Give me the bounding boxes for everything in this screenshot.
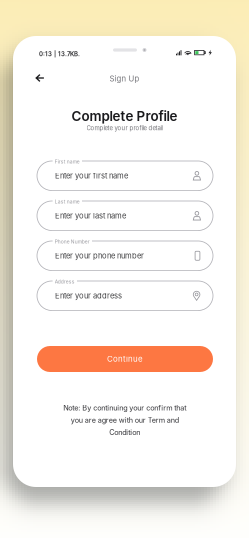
staticText: 0:13 | 13.7KB.	[39, 50, 80, 58]
staticText: Enter your address	[55, 291, 122, 300]
staticText: Address	[55, 279, 75, 285]
button[interactable]: Enter your first name	[37, 161, 213, 190]
button[interactable]: Enter your phone number	[37, 241, 213, 270]
button[interactable]: Continue	[37, 346, 213, 372]
button[interactable]: Enter your last name	[37, 201, 213, 230]
staticText: Enter your last name	[55, 211, 126, 220]
button[interactable]: Back	[30, 68, 50, 88]
staticText: Enter your first name	[55, 171, 128, 180]
staticText: Continue	[107, 354, 143, 364]
staticText: First name	[55, 159, 80, 165]
staticText: Last name	[55, 199, 80, 205]
staticText: Phone Number	[55, 239, 90, 245]
staticText: Complete Profile	[71, 108, 177, 124]
staticText: Enter your phone number	[55, 251, 144, 260]
staticText: Note: By continuing your confirm that yo…	[63, 403, 186, 437]
staticText: Complete your profile detail	[86, 124, 162, 132]
staticText: Sign Up	[109, 74, 139, 83]
button[interactable]: Enter your address	[37, 281, 213, 310]
